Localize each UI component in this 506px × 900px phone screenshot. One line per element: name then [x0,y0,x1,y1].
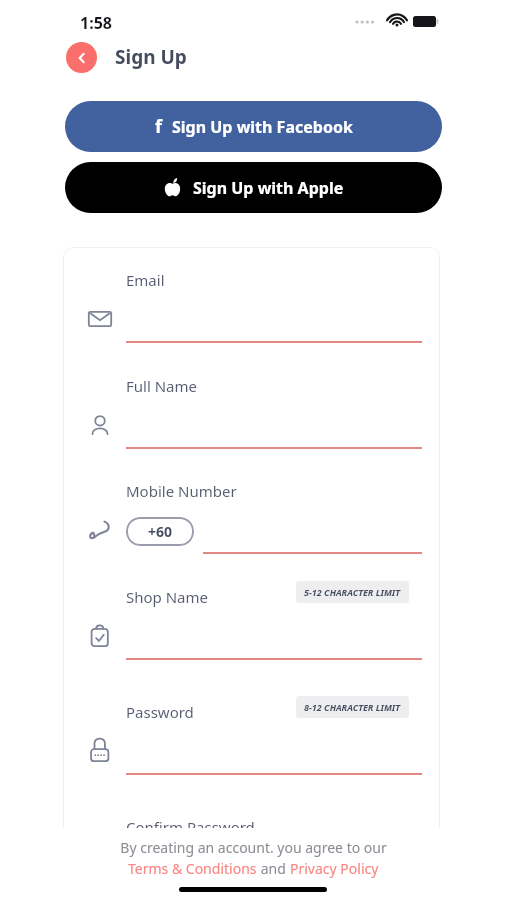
button[interactable]: Password [63,694,440,794]
staticText: Mobile Number [126,481,237,501]
button[interactable]: Mobile Number [63,473,440,573]
button[interactable]: Full Name [63,368,440,468]
staticText: By creating an account. you agree to our [120,838,387,857]
staticText: Full Name [126,376,197,396]
staticText: 5-12 CHARACTER LIMIT [304,586,401,598]
button[interactable]: Confirm Password [63,809,440,847]
button[interactable]: f [65,101,442,152]
staticText: and [257,859,290,878]
button[interactable]: Privacy Policy [290,859,379,878]
staticText: Email [126,270,165,290]
button[interactable]: Terms & Conditions [128,859,257,878]
staticText: f [155,114,162,139]
staticText: Shop Name [126,587,209,607]
staticText: Sign Up [115,44,187,70]
button[interactable]: +60 [126,517,194,546]
staticText: 1:58 [80,12,112,34]
staticText: Sign Up with Facebook [172,116,353,138]
button[interactable]: Shop Name [63,579,440,679]
staticText: Password [126,702,194,722]
staticText: Confirm Password [126,817,255,837]
button[interactable]: Back [66,42,97,73]
button[interactable]: Sign Up with Apple [65,162,442,213]
button[interactable]: Email [63,262,440,362]
staticText: 8-12 CHARACTER LIMIT [304,701,401,713]
staticText: +60 [148,522,173,541]
staticText: Sign Up with Apple [193,177,344,199]
